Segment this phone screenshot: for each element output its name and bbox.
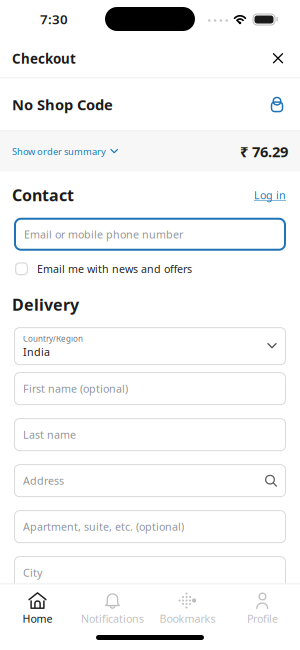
staticText: City	[23, 566, 42, 580]
staticText: ₹ 76.29	[240, 142, 288, 161]
button[interactable]: Notifications	[75, 584, 150, 630]
staticText: Email me with news and offers	[37, 262, 192, 276]
staticText: Last name	[23, 428, 76, 442]
staticText: Home	[22, 611, 52, 626]
staticText: Show order summary	[12, 145, 106, 158]
staticText: India	[23, 345, 50, 359]
button[interactable]: Email me with news and offers	[0, 251, 192, 276]
staticText: Checkout	[12, 50, 76, 67]
button[interactable]: Log in	[254, 188, 286, 202]
staticText: Contact	[12, 184, 74, 206]
staticText: Apartment, suite, etc. (optional)	[23, 520, 184, 534]
staticText: Email or mobile phone number	[24, 227, 183, 241]
staticText: Bookmarks	[159, 611, 215, 626]
button[interactable]: Country/Region	[0, 315, 300, 365]
staticText: Profile	[247, 611, 278, 626]
button[interactable]: Close	[265, 46, 291, 71]
button[interactable]: Home	[0, 584, 75, 630]
staticText: Country/Region	[23, 333, 83, 344]
staticText: No Shop Code	[12, 95, 113, 114]
staticText: Address	[23, 474, 64, 488]
button[interactable]: Profile	[225, 584, 300, 630]
staticText: First name (optional)	[23, 382, 128, 396]
button[interactable]: Bookmarks	[150, 584, 225, 630]
staticText: Notifications	[81, 611, 144, 626]
button[interactable]: Show order summary	[12, 145, 118, 158]
button[interactable]: Shop	[263, 90, 291, 118]
staticText: Log in	[254, 188, 286, 202]
staticText: 7:30	[40, 10, 68, 28]
staticText: Delivery	[12, 294, 79, 315]
